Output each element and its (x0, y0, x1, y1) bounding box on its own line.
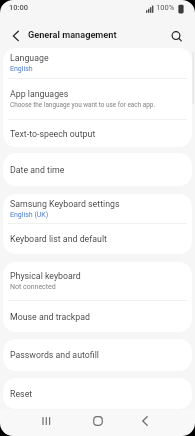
staticText: Reset (10, 389, 33, 399)
button[interactable] (6, 26, 26, 46)
staticText: General management (28, 29, 117, 40)
staticText: Language (10, 53, 49, 63)
staticText: Not connected (10, 283, 56, 291)
staticText: Text-to-speech output (10, 129, 96, 139)
button[interactable]: Text-to-speech output (3, 120, 192, 147)
button[interactable]: Date and time (3, 153, 192, 186)
button[interactable]: Keyboard list and default (3, 224, 192, 254)
staticText: Date and time (10, 165, 65, 175)
button[interactable]: Physical keyboard (3, 262, 192, 300)
button[interactable]: Reset (3, 378, 192, 409)
button[interactable]: Passwords and autofill (3, 339, 192, 371)
staticText: App languages (10, 89, 69, 99)
staticText: Choose the language you want to use for … (10, 101, 156, 109)
button[interactable]: Mouse and trackpad (3, 301, 192, 332)
button[interactable]: Samsung Keyboard settings (3, 194, 192, 223)
staticText: English (10, 65, 33, 73)
staticText: Mouse and trackpad (10, 312, 90, 322)
staticText: Physical keyboard (10, 271, 81, 281)
staticText: Samsung Keyboard settings (10, 199, 120, 209)
button[interactable] (166, 26, 188, 48)
button[interactable]: App languages (3, 79, 192, 119)
staticText: English (UK) (10, 211, 49, 219)
staticText: Keyboard list and default (10, 234, 107, 244)
button[interactable] (90, 413, 106, 429)
staticText: 10:00 (9, 3, 29, 12)
button[interactable] (38, 413, 54, 429)
button[interactable] (137, 413, 153, 429)
button[interactable]: Language (3, 48, 192, 78)
staticText: 100% (156, 3, 175, 12)
staticText: Passwords and autofill (10, 350, 99, 360)
